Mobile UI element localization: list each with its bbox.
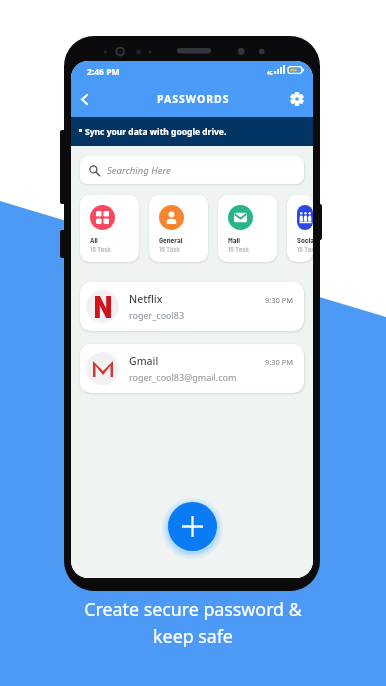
staticText: 2:46 PM	[87, 66, 120, 78]
staticText: 9:30 PM	[265, 295, 294, 305]
staticText: 4G	[267, 70, 273, 76]
staticText: keep safe	[153, 624, 233, 648]
staticText: Social	[297, 235, 313, 244]
staticText: 15 Task	[228, 245, 249, 254]
staticText: 15 Task	[90, 245, 111, 254]
button[interactable]: Searching Here	[80, 156, 304, 184]
staticText: Create secure password &	[84, 597, 302, 621]
staticText: roger_cool83	[129, 309, 185, 321]
staticText: General	[159, 235, 183, 244]
button[interactable]: Mail	[218, 195, 277, 262]
staticText: 15 Task	[159, 245, 180, 254]
button[interactable]: Back	[72, 87, 96, 111]
staticText: roger_cool83@gmail.com	[129, 371, 237, 383]
staticText: Netflix	[129, 292, 163, 306]
button[interactable]: Add password	[168, 502, 217, 551]
staticText: All	[90, 235, 98, 244]
staticText: 9:30 PM	[265, 357, 294, 367]
staticText: Mail	[228, 235, 241, 244]
button[interactable]: Gmail	[80, 344, 304, 393]
staticText: Gmail	[129, 354, 159, 368]
staticText: Searching Here	[107, 164, 171, 177]
button[interactable]: Netflix	[80, 282, 304, 331]
button[interactable]: All	[80, 195, 139, 262]
staticText: PASSWORDS	[157, 92, 230, 106]
button[interactable]: General	[149, 195, 208, 262]
button[interactable]: Settings	[285, 87, 309, 111]
button[interactable]: Social	[287, 195, 313, 262]
staticText: 15 Task	[297, 245, 313, 254]
staticText: Sync your data with google drive.	[85, 126, 227, 138]
